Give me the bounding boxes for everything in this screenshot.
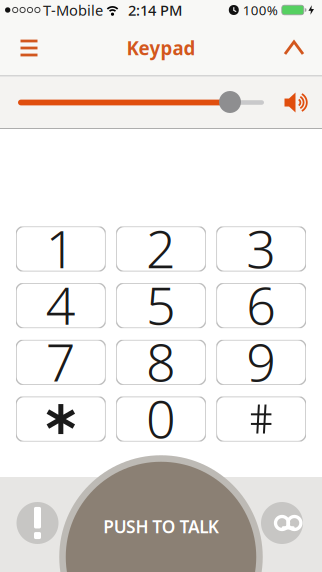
button[interactable]: 2 — [116, 226, 206, 271]
staticText: 2 — [146, 213, 176, 282]
button[interactable]: Menu — [7, 26, 51, 70]
button[interactable]: 4 — [16, 283, 106, 328]
button[interactable]: 0 — [116, 397, 206, 442]
staticText: 2:14 PM — [128, 0, 182, 20]
button[interactable]: Speaker — [278, 84, 314, 120]
staticText: 1 — [46, 213, 76, 282]
button[interactable]: 5 — [116, 283, 206, 328]
staticText: 9 — [246, 327, 276, 396]
staticText: T-Mobile — [43, 0, 103, 20]
button[interactable]: 1 — [16, 226, 106, 271]
button[interactable]: 7 — [16, 340, 106, 385]
staticText: 0 — [146, 383, 176, 453]
button[interactable]: Star — [16, 397, 106, 442]
button[interactable]: Alerts — [15, 501, 59, 545]
button[interactable]: PUSH TO TALK — [59, 455, 263, 572]
button[interactable]: Pound — [216, 397, 306, 442]
staticText: 7 — [46, 327, 76, 396]
button[interactable]: 3 — [216, 226, 306, 271]
staticText: Keypad — [126, 36, 195, 60]
button[interactable]: 8 — [116, 340, 206, 385]
staticText: 4 — [46, 270, 76, 339]
staticText: 3 — [246, 213, 276, 282]
button[interactable]: Voicemail — [260, 501, 304, 545]
staticText: 5 — [146, 270, 176, 339]
staticText: 8 — [146, 327, 176, 396]
staticText: 100% — [243, 1, 278, 19]
button[interactable]: 6 — [216, 283, 306, 328]
button[interactable]: Collapse — [272, 26, 316, 70]
staticText: 6 — [246, 270, 276, 339]
staticText: PUSH TO TALK — [103, 515, 219, 538]
button[interactable]: 9 — [216, 340, 306, 385]
